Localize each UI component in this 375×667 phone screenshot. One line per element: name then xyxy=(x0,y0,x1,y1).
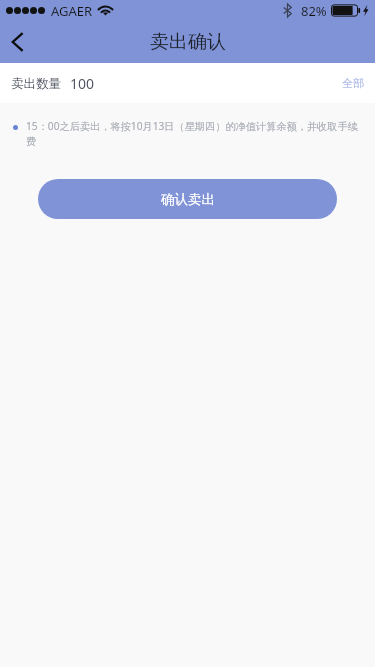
button[interactable]: 确认卖出 xyxy=(38,179,337,219)
button[interactable]: 全部 xyxy=(331,63,375,103)
staticText: 卖出确认 xyxy=(150,30,226,54)
staticText: 卖出数量 xyxy=(11,76,62,92)
staticText: 15：00之后卖出，将按10月13日（星期四）的净值计算余额，并收取手续费 xyxy=(26,119,364,148)
button[interactable]: Back xyxy=(0,21,42,63)
staticText: 82% xyxy=(301,2,327,20)
staticText: 100 xyxy=(70,74,95,93)
staticText: 确认卖出 xyxy=(161,191,215,208)
staticText: AGAER xyxy=(51,2,93,20)
staticText: 全部 xyxy=(342,76,364,90)
